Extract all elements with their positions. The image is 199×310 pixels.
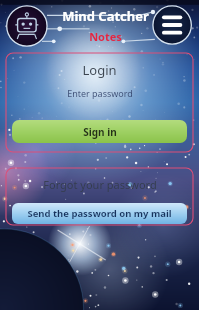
staticText: Mind Catcher	[62, 7, 149, 25]
staticText: Login	[82, 61, 117, 79]
button[interactable]: Profile	[4, 5, 44, 45]
button[interactable]: Menu	[155, 5, 195, 45]
staticText: Forgot your password	[43, 177, 157, 192]
staticText: Sign in	[83, 125, 117, 139]
button[interactable]: Send the password on my mail	[12, 203, 187, 224]
staticText: Enter password	[67, 87, 133, 99]
button[interactable]: Sign in	[12, 120, 187, 143]
staticText: Send the password on my mail	[27, 207, 172, 220]
button[interactable]: Notes	[89, 29, 122, 44]
